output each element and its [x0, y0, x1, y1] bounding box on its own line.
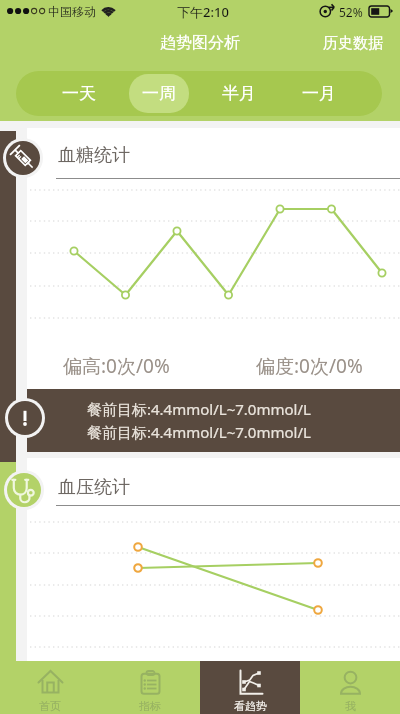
button[interactable]: Blood glucose: [6, 141, 40, 175]
staticText: 首页: [39, 699, 61, 713]
staticText: 看趋势: [234, 699, 267, 713]
button[interactable]: 指标: [100, 661, 200, 714]
staticText: 餐前目标:4.4mmol/L~7.0mmol/L: [87, 399, 311, 419]
button[interactable]: 趋势图分析: [156, 29, 244, 57]
staticText: 偏度:0次/0%: [256, 353, 363, 379]
button[interactable]: 首页: [0, 661, 100, 714]
staticText: 下午2:10: [177, 3, 229, 21]
staticText: 偏高:0次/0%: [63, 353, 170, 379]
staticText: 血糖统计: [58, 144, 130, 167]
button[interactable]: Target info: [8, 401, 42, 435]
button[interactable]: 历史数据: [306, 30, 400, 57]
staticText: 指标: [139, 699, 161, 713]
staticText: 半月: [222, 83, 256, 104]
button[interactable]: 半月: [209, 74, 269, 113]
button[interactable]: Blood pressure: [7, 473, 41, 507]
button[interactable]: 看趋势: [200, 661, 300, 714]
staticText: 中国移动: [48, 4, 96, 19]
button[interactable]: 我: [300, 661, 400, 714]
staticText: 血压统计: [58, 476, 130, 499]
staticText: 52%: [339, 4, 363, 20]
staticText: 餐前目标:4.4mmol/L~7.0mmol/L: [87, 422, 311, 442]
button[interactable]: 一天: [49, 74, 109, 113]
staticText: 我: [345, 699, 356, 713]
staticText: 一天: [62, 83, 96, 104]
staticText: 一月: [302, 83, 336, 104]
staticText: 一周: [142, 83, 176, 104]
button[interactable]: 一周: [129, 74, 189, 113]
button[interactable]: 一月: [289, 74, 349, 113]
